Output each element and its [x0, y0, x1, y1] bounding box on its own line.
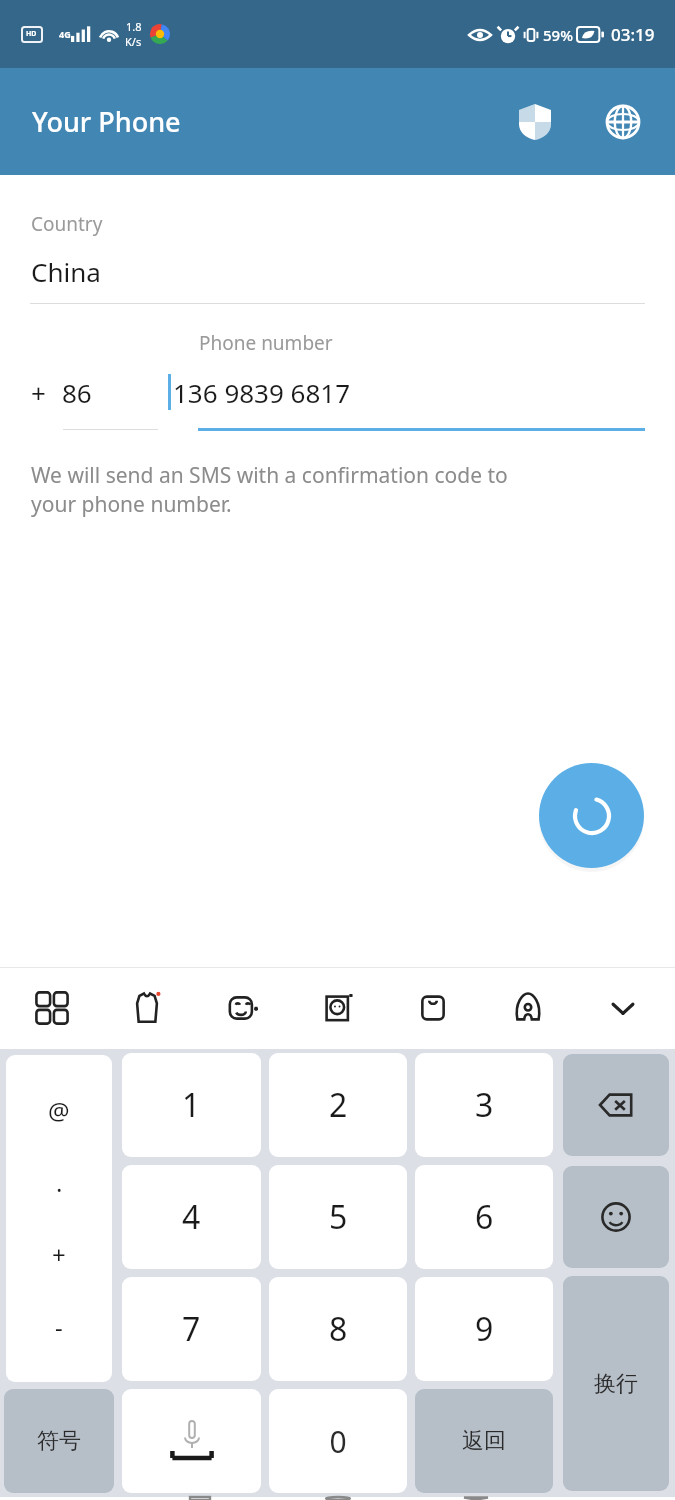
button[interactable]: Avatar [310, 980, 366, 1036]
button[interactable]: 5 [269, 1165, 407, 1269]
staticText: Country [31, 211, 103, 237]
button[interactable]: 9 [415, 1277, 553, 1381]
button[interactable]: 7 [122, 1277, 261, 1381]
button[interactable]: Privacy [505, 92, 565, 152]
staticText: Your Phone [32, 103, 181, 140]
button[interactable]: Hide keyboard [595, 980, 651, 1036]
staticText: 86 [62, 375, 92, 410]
button[interactable]: Apps [24, 980, 80, 1036]
button[interactable]: Emoji [563, 1166, 669, 1268]
staticText: 8 [329, 1307, 348, 1351]
staticText: + [31, 375, 46, 410]
button[interactable]: China [0, 249, 675, 293]
staticText: Phone number [199, 330, 333, 356]
staticText: 4G [59, 28, 71, 40]
button[interactable]: Next [539, 763, 644, 868]
staticText: 03:19 [611, 23, 655, 46]
button[interactable]: 换行 [563, 1276, 669, 1491]
staticText: 4 [182, 1195, 201, 1239]
button[interactable]: Stickers [119, 980, 175, 1036]
staticText: . [56, 1166, 63, 1199]
button[interactable]: 1 [122, 1053, 261, 1157]
staticText: @ [48, 1094, 70, 1127]
staticText: K/s [125, 34, 142, 49]
staticText: 7 [182, 1307, 201, 1351]
staticText: 1 [182, 1083, 201, 1127]
button[interactable]: Language [593, 92, 653, 152]
staticText: 59% [543, 25, 573, 45]
button[interactable]: Back [436, 1497, 516, 1500]
staticText: 6 [475, 1195, 494, 1239]
button[interactable]: Profile [500, 980, 556, 1036]
staticText: your phone number. [31, 490, 232, 519]
button[interactable]: 2 [269, 1053, 407, 1157]
button[interactable]: 136 9839 6817 [168, 368, 675, 416]
button[interactable]: 6 [415, 1165, 553, 1269]
staticText: 换行 [594, 1370, 638, 1398]
button[interactable]: Backspace [563, 1054, 669, 1156]
staticText: 符号 [37, 1427, 81, 1455]
staticText: 返回 [462, 1427, 506, 1455]
button[interactable]: Clipboard [405, 980, 461, 1036]
button[interactable]: 符号 [4, 1389, 114, 1493]
button[interactable]: Home [298, 1497, 378, 1500]
staticText: 0 [329, 1421, 347, 1462]
button[interactable]: 返回 [415, 1389, 553, 1493]
button[interactable]: 0 [269, 1389, 407, 1493]
staticText: 2 [329, 1083, 348, 1127]
button[interactable]: 3 [415, 1053, 553, 1157]
staticText: + [52, 1238, 66, 1271]
button[interactable]: + [0, 368, 168, 416]
staticText: 9 [475, 1307, 494, 1351]
button[interactable]: Recents [160, 1497, 240, 1500]
button[interactable]: 8 [269, 1277, 407, 1381]
staticText: 5 [329, 1195, 348, 1239]
button[interactable]: Emoticons [214, 980, 270, 1036]
button[interactable]: 4 [122, 1165, 261, 1269]
staticText: HD [26, 29, 37, 39]
staticText: China [31, 254, 101, 289]
staticText: 1.8 [126, 19, 142, 34]
button[interactable]: @ [6, 1055, 112, 1382]
staticText: We will send an SMS with a confirmation … [31, 461, 508, 490]
staticText: - [55, 1310, 63, 1343]
staticText: 3 [475, 1083, 494, 1127]
staticText: 136 9839 6817 [173, 375, 351, 410]
button[interactable]: Space [122, 1389, 261, 1493]
